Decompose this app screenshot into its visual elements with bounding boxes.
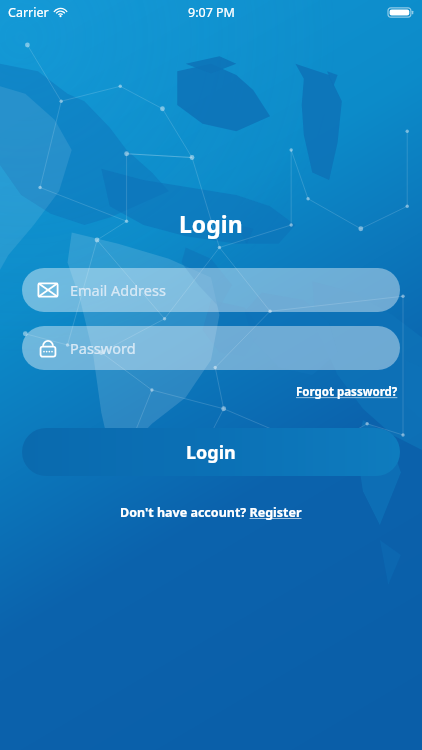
staticText: Email Address bbox=[70, 280, 166, 300]
staticText: Login bbox=[179, 208, 243, 239]
staticText: 9:07 PM bbox=[188, 4, 235, 21]
button[interactable]: Forgot password? bbox=[294, 382, 400, 402]
button[interactable]: Email Address bbox=[22, 268, 400, 312]
staticText: Password bbox=[70, 338, 136, 358]
staticText: Login bbox=[186, 440, 236, 465]
staticText: Don't have account? Register bbox=[120, 504, 302, 521]
button[interactable]: Password bbox=[22, 326, 400, 370]
staticText: Forgot password? bbox=[296, 384, 398, 400]
button[interactable]: Don't have account? Register bbox=[116, 502, 306, 523]
button[interactable]: Login bbox=[22, 428, 400, 476]
staticText: Carrier bbox=[8, 4, 49, 21]
